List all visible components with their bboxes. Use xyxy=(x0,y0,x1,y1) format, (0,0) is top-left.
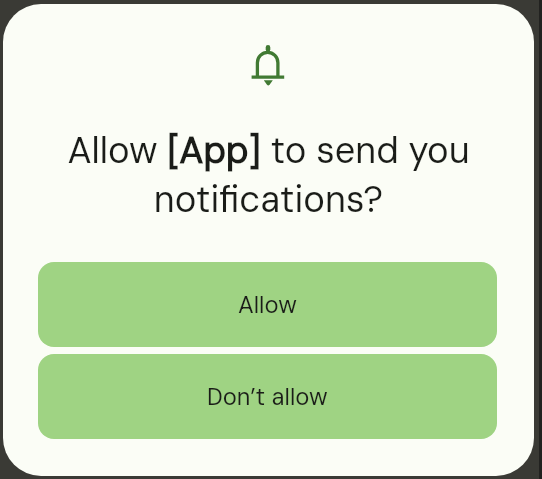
staticText: Allow [App] to send you notifications? xyxy=(27,127,510,223)
staticText: Don’t allow xyxy=(207,381,328,412)
other: Notifications xyxy=(248,42,294,94)
button[interactable]: Allow xyxy=(38,262,497,347)
button[interactable]: Don’t allow xyxy=(38,354,497,439)
staticText: Allow xyxy=(238,289,297,320)
